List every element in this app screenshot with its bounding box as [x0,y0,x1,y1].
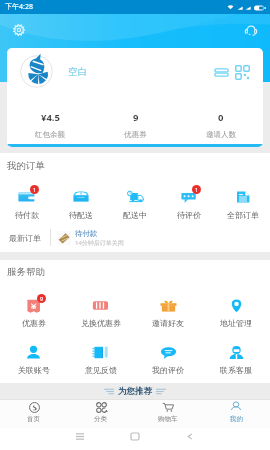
button[interactable]: 分类 [67,400,134,428]
button[interactable]: 购物车 [134,400,202,428]
staticText: 意见反馈 [85,365,117,375]
button[interactable]: 地址管理 [202,295,270,328]
staticText: 空白 [68,66,87,78]
staticText: 分类 [94,415,107,423]
staticText: 待配送 [69,210,93,220]
button[interactable]: 最新订单 [0,225,270,250]
staticText: ¥4.5 [41,111,60,124]
staticText: 9 [40,295,44,302]
staticText: 我的订单 [7,160,45,172]
staticText: 1 [195,186,199,193]
button[interactable]: 客服 [241,20,261,40]
button[interactable]: 关联账号 [0,342,67,375]
staticText: 我的评价 [152,365,184,375]
button[interactable]: 我的评价 [134,342,202,375]
staticText: 最新订单 [9,233,41,243]
staticText: 待评价 [177,210,201,220]
staticText: 待付款 [75,229,98,238]
button[interactable]: 最近任务 [65,428,95,444]
button[interactable]: 邀请好友 [134,295,202,328]
staticText: 地址管理 [220,318,252,328]
staticText: 待付款 [15,210,39,220]
staticText: 优惠券 [22,318,46,328]
button[interactable]: 9 [93,95,178,144]
staticText: 服务帮助 [7,266,45,278]
staticText: 14分钟后订单关闭 [75,239,124,247]
staticText: 兑换优惠券 [81,318,121,328]
button[interactable]: 联系客服 [202,342,270,375]
button[interactable]: 我的 [202,400,270,428]
staticText: 0 [218,111,224,124]
button[interactable]: 1 [162,186,216,220]
button[interactable]: 返回 [175,428,205,444]
staticText: 为您推荐 [118,386,152,397]
button[interactable]: ¥4.5 [7,95,93,144]
button[interactable]: 二维码 [234,64,250,80]
staticText: 1 [33,186,37,193]
staticText: 优惠券 [124,130,147,139]
button[interactable]: 全部订单 [216,186,270,220]
staticText: 配送中 [123,210,147,220]
staticText: 关联账号 [18,365,50,375]
staticText: 首页 [27,415,40,423]
staticText: 邀请好友 [152,318,184,328]
staticText: 我的 [230,415,243,423]
staticText: 下午4:28 [5,2,33,12]
staticText: 红包余额 [35,130,65,139]
button[interactable]: 待配送 [54,186,108,220]
button[interactable]: 意见反馈 [67,342,134,375]
button[interactable]: 兑换优惠券 [67,295,134,328]
button[interactable]: 首页 [0,400,67,428]
staticText: 全部订单 [227,210,259,220]
button[interactable]: 配送中 [108,186,162,220]
staticText: 邀请人数 [206,130,236,139]
button[interactable]: 主页 [120,428,150,444]
staticText: 购物车 [158,415,178,423]
button[interactable]: 设置 [9,20,29,40]
button[interactable]: 空白 [7,48,263,95]
button[interactable]: 0 [178,95,263,144]
staticText: 9 [133,111,139,124]
button[interactable]: 会员卡 [213,64,229,80]
staticText: 联系客服 [220,365,252,375]
button[interactable]: 9 [0,295,67,328]
button[interactable]: 1 [0,186,54,220]
